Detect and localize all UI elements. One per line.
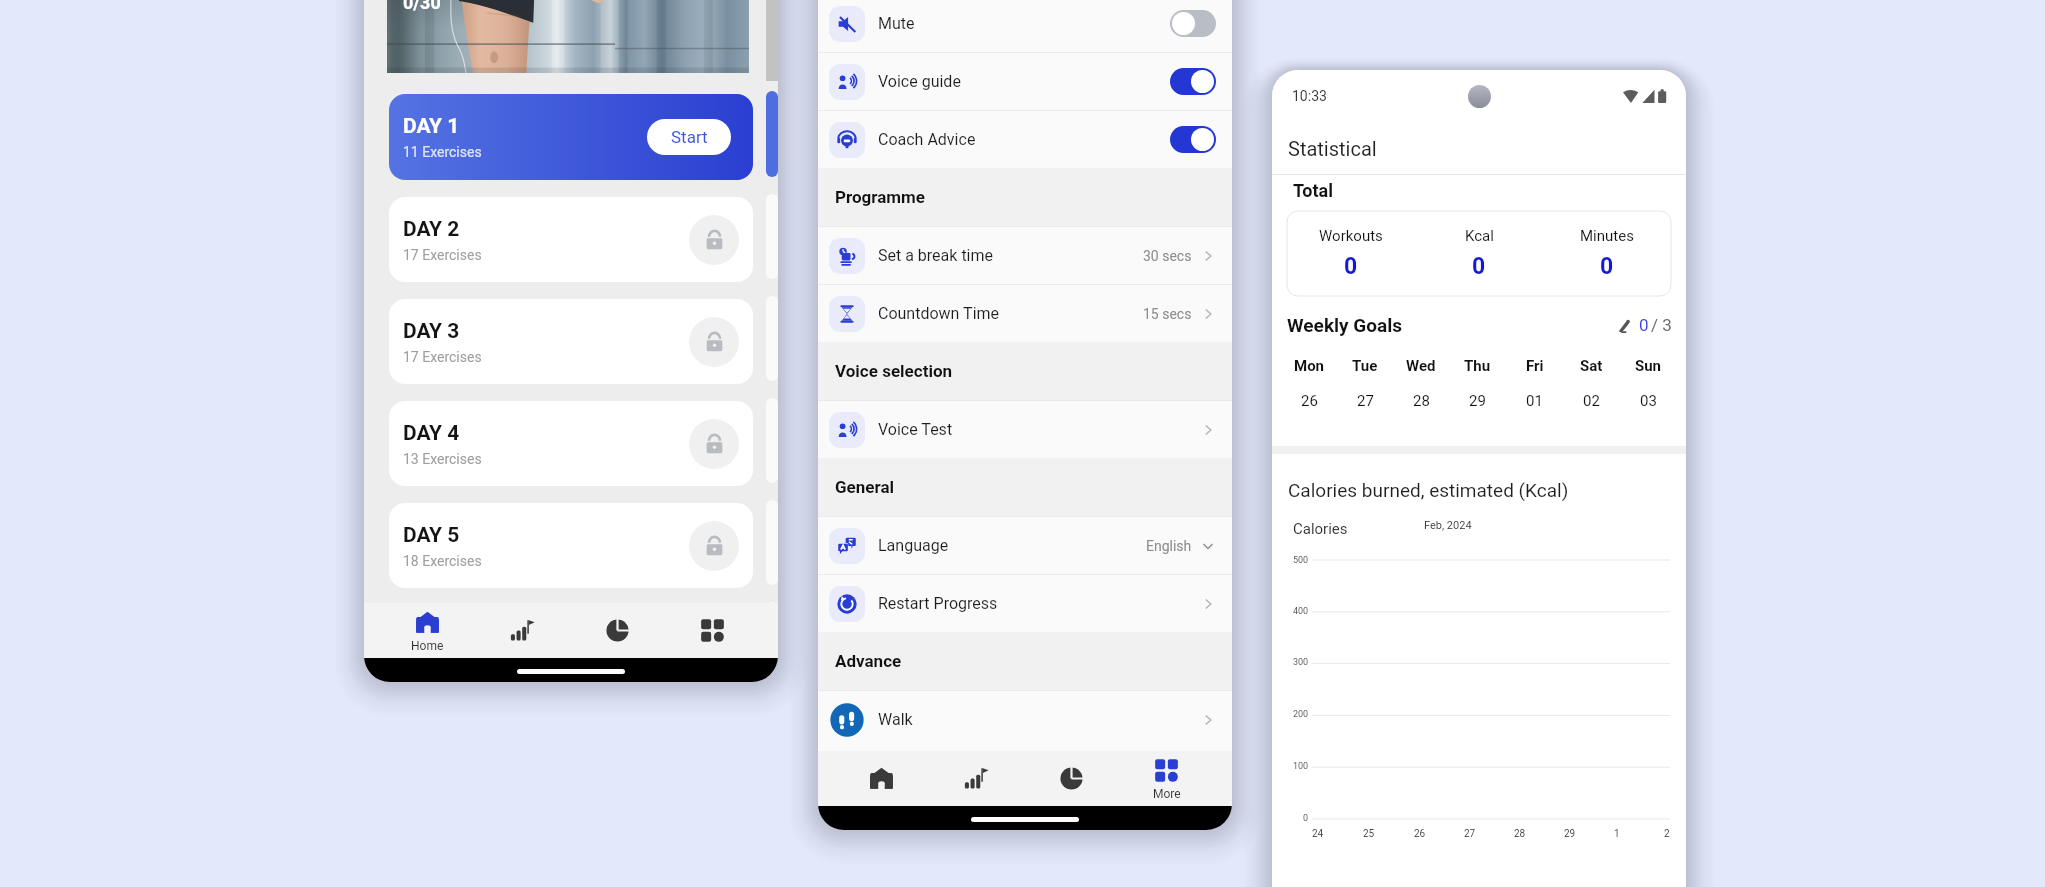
staticText: 11 Exercises: [403, 144, 482, 160]
button[interactable]: DAY 4: [389, 401, 753, 486]
staticText: Voice Test: [878, 420, 953, 439]
button[interactable]: Start: [647, 119, 731, 155]
staticText: 02: [1583, 392, 1600, 410]
staticText: Kcal: [1465, 227, 1494, 245]
staticText: 0: [1600, 253, 1614, 280]
staticText: 29: [1564, 828, 1576, 840]
button[interactable]: Sat: [1563, 357, 1620, 410]
staticText: / 3: [1651, 315, 1672, 335]
button[interactable]: Wed: [1393, 357, 1449, 410]
button[interactable]: Mon: [1281, 357, 1337, 410]
button[interactable]: Set a break time: [818, 227, 1232, 284]
button[interactable]: Countdown Time: [818, 285, 1232, 342]
button[interactable]: Home: [380, 603, 475, 658]
button[interactable]: Edit weekly goal: [1617, 315, 1672, 335]
staticText: 300: [1293, 657, 1309, 668]
staticText: 0/30: [403, 0, 441, 13]
staticText: Home: [411, 639, 444, 653]
staticText: English: [1146, 538, 1192, 554]
button[interactable]: Voice Test: [818, 401, 1232, 458]
button[interactable]: Home: [834, 751, 929, 806]
staticText: DAY 5: [403, 523, 460, 548]
button[interactable]: Mute: [818, 0, 1232, 52]
button[interactable]: Toggle: [1170, 10, 1216, 37]
staticText: Restart Progress: [878, 594, 998, 613]
staticText: Mute: [878, 14, 915, 33]
staticText: DAY 1: [403, 114, 460, 139]
staticText: Walk: [878, 710, 913, 729]
staticText: 17 Exercises: [403, 247, 482, 263]
staticText: Statistical: [1288, 137, 1377, 160]
other: Locked: [689, 419, 739, 469]
staticText: 0: [1639, 315, 1649, 335]
staticText: 15 secs: [1143, 306, 1192, 322]
button[interactable]: Analysis: [1024, 751, 1119, 806]
staticText: Programme: [835, 187, 925, 207]
staticText: 26: [1414, 828, 1426, 840]
button[interactable]: Tue: [1337, 357, 1393, 410]
staticText: Minutes: [1580, 227, 1634, 245]
staticText: 30 secs: [1143, 248, 1192, 264]
button[interactable]: Toggle: [1170, 68, 1216, 95]
staticText: 27: [1357, 392, 1374, 410]
button[interactable]: Report: [475, 603, 570, 658]
staticText: 13 Exercises: [403, 451, 482, 467]
button[interactable]: DAY 2: [389, 197, 753, 282]
staticText: 400: [1293, 606, 1309, 617]
staticText: Voice guide: [878, 72, 961, 91]
staticText: Total: [1293, 180, 1333, 201]
staticText: 0: [1344, 253, 1358, 280]
staticText: Workouts: [1319, 227, 1383, 245]
staticText: 24: [1312, 828, 1324, 840]
other: Locked: [689, 521, 739, 571]
staticText: 17 Exercises: [403, 349, 482, 365]
staticText: Calories: [1293, 520, 1348, 538]
staticText: 10:33: [1292, 88, 1327, 104]
staticText: DAY 3: [403, 319, 460, 344]
button[interactable]: Walk: [818, 691, 1232, 748]
staticText: Fri: [1526, 357, 1544, 375]
staticText: Coach Advice: [878, 130, 976, 149]
staticText: Countdown Time: [878, 304, 1000, 323]
button[interactable]: Toggle: [1170, 126, 1216, 153]
button[interactable]: Analysis: [570, 603, 665, 658]
button[interactable]: More: [665, 603, 760, 658]
button[interactable]: Voice guide: [818, 53, 1232, 110]
staticText: Language: [878, 536, 949, 555]
staticText: 27: [1464, 828, 1476, 840]
staticText: 26: [1301, 392, 1318, 410]
button[interactable]: Language: [818, 517, 1232, 574]
button[interactable]: Report: [929, 751, 1024, 806]
staticText: 25: [1363, 828, 1375, 840]
staticText: Mon: [1294, 357, 1325, 375]
staticText: 2: [1664, 828, 1670, 840]
staticText: Start: [671, 127, 708, 147]
staticText: Feb, 2024: [1424, 519, 1472, 532]
staticText: 100: [1293, 761, 1309, 772]
button[interactable]: Thu: [1449, 357, 1506, 410]
button[interactable]: Sun: [1620, 357, 1677, 410]
staticText: General: [835, 477, 895, 497]
button[interactable]: DAY 1: [389, 94, 753, 180]
staticText: 0: [1472, 253, 1486, 280]
button[interactable]: DAY 3: [389, 299, 753, 384]
button[interactable]: Restart Progress: [818, 575, 1232, 632]
staticText: More: [1153, 787, 1181, 801]
other: Locked: [689, 317, 739, 367]
staticText: Weekly Goals: [1287, 314, 1403, 336]
staticText: 28: [1413, 392, 1430, 410]
other: Locked: [689, 215, 739, 265]
staticText: 18 Exercises: [403, 553, 482, 569]
staticText: Advance: [835, 651, 902, 671]
button[interactable]: More: [1119, 751, 1214, 806]
staticText: 28: [1514, 828, 1526, 840]
staticText: DAY 4: [403, 421, 460, 446]
staticText: Sun: [1635, 357, 1662, 375]
staticText: 1: [1614, 828, 1620, 840]
button[interactable]: Coach Advice: [818, 111, 1232, 168]
staticText: Tue: [1352, 357, 1378, 375]
button[interactable]: DAY 5: [389, 503, 753, 588]
staticText: DAY 2: [403, 217, 460, 242]
staticText: 29: [1469, 392, 1486, 410]
button[interactable]: Fri: [1506, 357, 1563, 410]
